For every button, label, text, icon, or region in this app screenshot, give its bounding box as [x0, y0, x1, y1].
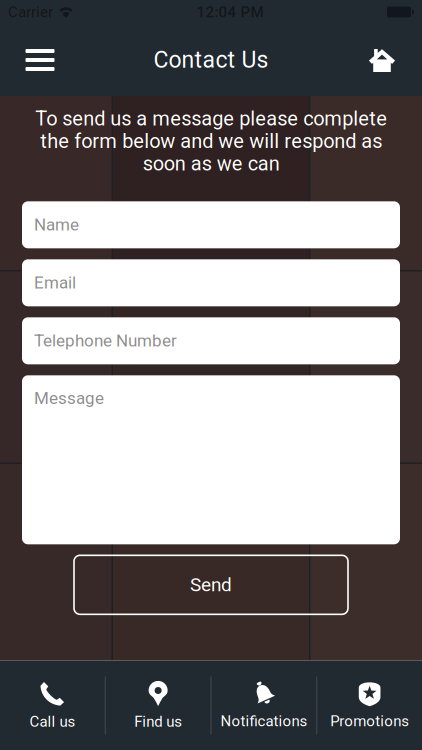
button[interactable]: Call us	[0, 661, 105, 750]
staticText: Promotions	[330, 712, 409, 730]
staticText: Find us	[134, 713, 182, 730]
staticText: 12:04 PM	[196, 3, 263, 21]
staticText: Email	[34, 273, 76, 293]
button[interactable]: Menu	[12, 27, 68, 93]
staticText: Carrier	[8, 3, 53, 21]
button[interactable]: Home	[354, 27, 410, 93]
staticText: Telephone Number	[34, 331, 177, 351]
button[interactable]: Find us	[106, 661, 211, 750]
staticText: Message	[34, 388, 104, 408]
button[interactable]: Notifications	[211, 661, 316, 750]
staticText: Call us	[29, 713, 75, 730]
button[interactable]: Promotions	[317, 661, 422, 750]
button[interactable]: Send	[74, 555, 348, 614]
staticText: Contact Us	[153, 46, 268, 73]
staticText: Notifications	[220, 712, 307, 730]
staticText: Send	[190, 574, 232, 596]
staticText: To send us a message please complete the…	[35, 107, 387, 175]
staticText: Name	[34, 215, 79, 235]
